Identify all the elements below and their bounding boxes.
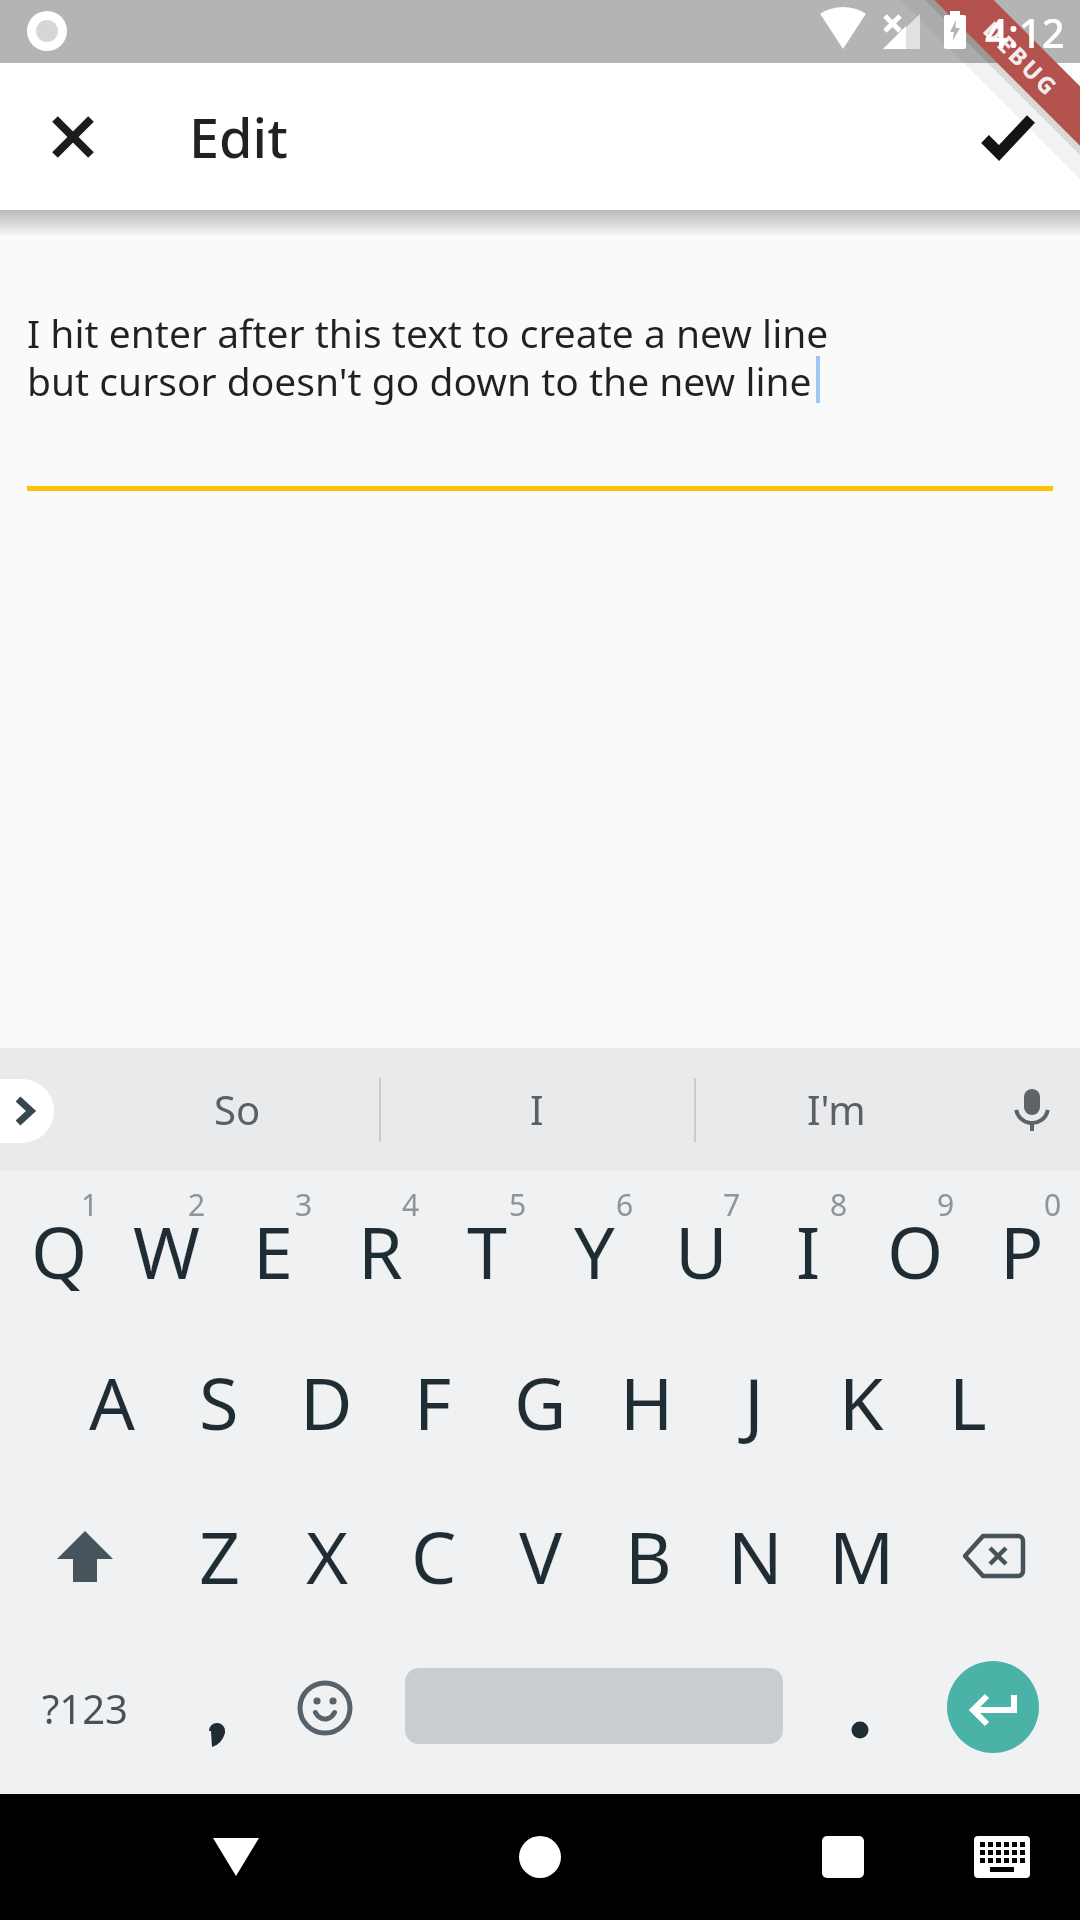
staticText: Z [199,1507,241,1605]
staticText: G [514,1353,567,1451]
button[interactable]: ?123 [10,1643,160,1773]
button[interactable]: K [809,1332,913,1472]
staticText: R [358,1202,403,1300]
button[interactable] [25,1496,145,1616]
button[interactable] [480,1797,600,1917]
button[interactable] [944,1799,1060,1915]
staticText: I'm [807,1082,866,1136]
staticText: 1 [81,1184,99,1225]
staticText: 2 [188,1184,206,1225]
staticText: I hit enter after this text to create a … [27,306,829,407]
button[interactable]: B [596,1486,700,1626]
button[interactable]: O [863,1181,967,1321]
button[interactable]: J [702,1332,806,1472]
button[interactable]: R [328,1181,432,1321]
staticText: 4:12 [985,5,1065,59]
button[interactable]: I [756,1181,860,1321]
button[interactable]: T [435,1181,539,1321]
button[interactable]: P [970,1181,1074,1321]
button[interactable] [25,89,121,185]
staticText: 9 [937,1184,955,1225]
button[interactable]: L [916,1332,1020,1472]
staticText: Q [31,1202,88,1300]
button[interactable]: Z [168,1486,272,1626]
button[interactable]: H [595,1332,699,1472]
button[interactable] [959,89,1055,185]
button[interactable]: Y [542,1181,646,1321]
staticText: D [300,1353,353,1451]
staticText: V [519,1507,563,1605]
button[interactable] [935,1496,1055,1616]
staticText: P [1000,1202,1044,1300]
button[interactable] [947,1661,1039,1753]
staticText: 4 [402,1184,420,1225]
button[interactable]: G [488,1332,592,1472]
staticText: H [620,1353,674,1451]
staticText: Y [574,1202,615,1300]
staticText: A [89,1353,136,1451]
button[interactable]: N [703,1486,807,1626]
staticText: B [625,1507,672,1605]
button[interactable]: X [275,1486,379,1626]
staticText: DEBUG [977,14,1067,103]
staticText: Edit [189,100,288,174]
staticText: I [530,1082,544,1136]
button[interactable]: W [114,1181,218,1321]
button[interactable]: F [381,1332,485,1472]
button[interactable] [0,1079,54,1143]
staticText: 6 [616,1184,634,1225]
button[interactable]: M [810,1486,914,1626]
staticText: E [253,1202,294,1300]
button[interactable] [783,1797,903,1917]
button[interactable]: A [60,1332,164,1472]
staticText: L [949,1353,987,1451]
staticText: N [728,1507,783,1605]
staticText: 3 [295,1184,313,1225]
button[interactable]: So [107,1059,367,1159]
staticText: K [839,1353,884,1451]
button[interactable]: S [167,1332,271,1472]
button[interactable] [800,1648,920,1768]
button[interactable]: I [407,1059,667,1159]
staticText: M [829,1507,895,1605]
staticText: 7 [723,1184,741,1225]
button[interactable]: D [274,1332,378,1472]
button[interactable] [1000,1079,1064,1143]
staticText: ?123 [42,1681,128,1735]
staticText: C [411,1507,457,1605]
staticText: 8 [830,1184,848,1225]
staticText: F [414,1353,452,1451]
staticText: J [744,1353,764,1451]
button[interactable]: V [489,1486,593,1626]
staticText: O [887,1202,944,1300]
staticText: I [796,1202,821,1300]
staticText: X [306,1507,349,1605]
button[interactable]: E [221,1181,325,1321]
button[interactable] [265,1648,385,1768]
staticText: S [199,1353,239,1451]
staticText: 5 [509,1184,527,1225]
staticText: So [214,1082,261,1136]
staticText: U [675,1202,728,1300]
button[interactable] [176,1797,296,1917]
button[interactable] [160,1648,280,1768]
button[interactable]: C [382,1486,486,1626]
staticText: 0 [1044,1184,1062,1225]
button[interactable]: U [649,1181,753,1321]
staticText: T [467,1202,508,1300]
button[interactable]: Q [7,1181,111,1321]
button[interactable]: I'm [706,1059,966,1159]
staticText: W [133,1202,200,1300]
